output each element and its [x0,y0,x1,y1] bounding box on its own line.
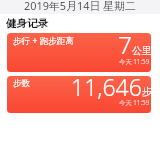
staticText: 2019年5月14日 星期二 [24,0,136,12]
staticText: 7 [118,33,132,61]
staticText: 健身记录 [6,17,48,30]
button[interactable]: 步数 [7,76,151,113]
staticText: 步数 [13,78,31,89]
staticText: 11,646 [71,76,142,102]
button[interactable]: 步行 + 跑步距离 [7,33,151,72]
staticText: 今天 11:59 [119,57,150,66]
staticText: 公里 [132,45,151,57]
staticText: 步 [142,86,151,98]
staticText: 步行 + 跑步距离 [13,35,74,47]
staticText: 今天 11:59 [119,98,150,107]
